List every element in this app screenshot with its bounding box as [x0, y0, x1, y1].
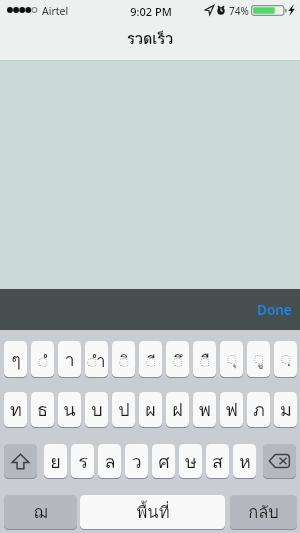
staticText: พ	[199, 395, 211, 424]
button[interactable]: Thai vowel key	[166, 341, 189, 377]
staticText: ส	[212, 447, 223, 476]
staticText: น	[63, 395, 76, 424]
button[interactable]: ๆ	[4, 341, 27, 377]
button[interactable]: ป	[112, 392, 135, 427]
button[interactable]: Thai vowel key	[139, 341, 162, 377]
button[interactable]: า	[58, 341, 81, 377]
staticText: กลับ	[248, 499, 279, 525]
staticText: ศ	[158, 447, 170, 476]
staticText: ห	[239, 447, 251, 476]
staticText: ◌ี	[146, 349, 156, 374]
staticText: ◌ฺ	[281, 346, 291, 371]
button[interactable]: ล	[98, 444, 121, 478]
button[interactable]: Thai vowel key	[274, 341, 297, 377]
staticText: ษ	[185, 447, 197, 476]
staticText: ฌ	[33, 499, 48, 525]
staticText: 9:02 PM	[1, 4, 300, 19]
button[interactable]: พ	[193, 392, 216, 427]
staticText: ◌ํ	[87, 349, 97, 374]
button[interactable]: Thai vowel key	[220, 341, 243, 377]
button[interactable]: Shift	[4, 444, 37, 478]
staticText: ย	[50, 447, 61, 476]
staticText: ว	[131, 447, 142, 476]
staticText: 74%	[229, 4, 249, 18]
staticText: ท	[10, 395, 22, 424]
staticText: ◌ํ	[38, 349, 48, 374]
button[interactable]: Thai vowel key	[193, 341, 216, 377]
button[interactable]: ษ	[179, 444, 202, 478]
button[interactable]: ฌ	[4, 495, 77, 529]
staticText: ◌ึ	[173, 349, 183, 374]
staticText: บ	[91, 395, 103, 424]
button[interactable]: Backspace	[263, 444, 296, 478]
staticText: า	[64, 345, 75, 374]
staticText: ◌ุ	[227, 346, 237, 371]
staticText: ◌ิ	[119, 349, 129, 374]
button[interactable]: ย	[44, 444, 67, 478]
staticText: ฝ	[172, 395, 183, 424]
staticText: ป	[118, 395, 130, 424]
staticText: ฟ	[225, 395, 238, 424]
button[interactable]: ท	[4, 392, 27, 427]
button[interactable]: พื้นที่	[80, 495, 225, 529]
staticText: ผ	[145, 395, 156, 424]
button[interactable]: ศ	[152, 444, 175, 478]
button[interactable]: Thai vowel key	[85, 341, 108, 377]
button[interactable]: ห	[233, 444, 256, 478]
button[interactable]: ฟ	[220, 392, 243, 427]
button[interactable]: Thai vowel key	[247, 341, 270, 377]
button[interactable]: บ	[85, 392, 108, 427]
staticText: ล	[104, 447, 116, 476]
button[interactable]: ร	[71, 444, 94, 478]
staticText: รวดเร็ว	[127, 27, 174, 50]
button[interactable]: กลับ	[230, 495, 297, 529]
button[interactable]: ม	[274, 392, 297, 427]
button[interactable]: Done	[243, 292, 300, 328]
button[interactable]: ว	[125, 444, 148, 478]
staticText: Done	[257, 301, 292, 319]
staticText: Airtel	[42, 4, 69, 18]
staticText: ภ	[253, 395, 265, 424]
staticText: า	[96, 347, 106, 374]
button[interactable]: ภ	[247, 392, 270, 427]
button[interactable]: Thai vowel key	[31, 341, 54, 377]
button[interactable]: ฝ	[166, 392, 189, 427]
button[interactable]: ธ	[31, 392, 54, 427]
staticText: ๆ	[11, 345, 21, 374]
staticText: ม	[280, 395, 292, 424]
staticText: ◌ื	[200, 349, 210, 374]
button[interactable]: ผ	[139, 392, 162, 427]
button[interactable]: ส	[206, 444, 229, 478]
staticText: ◌ู	[254, 346, 264, 371]
staticText: ร	[78, 447, 88, 476]
staticText: ธ	[37, 395, 48, 424]
staticText: พื้นที่	[136, 499, 170, 525]
button[interactable]: Thai vowel key	[112, 341, 135, 377]
button[interactable]: น	[58, 392, 81, 427]
